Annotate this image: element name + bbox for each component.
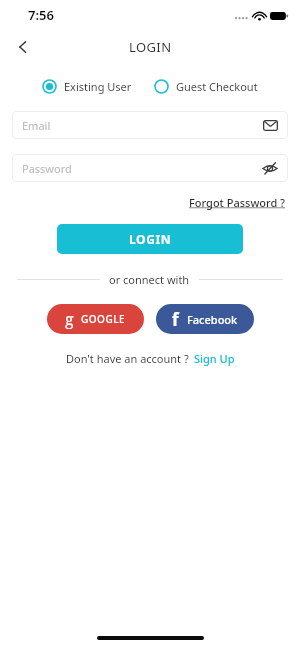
button[interactable]: Guest Checkout bbox=[154, 76, 258, 97]
button[interactable]: Password bbox=[12, 154, 288, 182]
button[interactable]: Email bbox=[12, 111, 288, 139]
staticText: or connect with bbox=[109, 272, 190, 287]
button[interactable]: Existing User bbox=[42, 76, 132, 97]
staticText: Forgot Password ? bbox=[189, 195, 286, 210]
button[interactable]: Back bbox=[8, 32, 38, 62]
staticText: Existing User bbox=[64, 79, 132, 94]
staticText: LOGIN bbox=[129, 38, 172, 56]
staticText: GOOGLE bbox=[81, 312, 126, 326]
staticText: Password bbox=[22, 161, 262, 176]
staticText: Facebook bbox=[187, 312, 238, 327]
staticText: 7:56 bbox=[28, 6, 54, 24]
button[interactable]: Sign Up bbox=[194, 351, 235, 366]
button[interactable]: g bbox=[47, 304, 144, 334]
staticText: Don't have an account ? bbox=[66, 351, 189, 366]
staticText: g bbox=[65, 308, 74, 330]
button[interactable]: Forgot Password ? bbox=[187, 193, 288, 212]
staticText: Guest Checkout bbox=[176, 79, 258, 94]
button[interactable]: LOGIN bbox=[57, 224, 243, 254]
staticText: Sign Up bbox=[194, 351, 235, 366]
button[interactable]: f bbox=[156, 304, 254, 334]
staticText: LOGIN bbox=[129, 231, 172, 247]
staticText: Email bbox=[22, 118, 263, 133]
staticText: f bbox=[172, 308, 179, 331]
